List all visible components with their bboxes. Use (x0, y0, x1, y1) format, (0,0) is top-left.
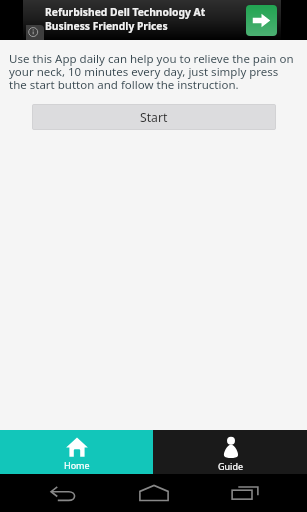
staticText: Use this App daily can help you to relie… (9, 51, 298, 93)
staticText: Home (64, 459, 90, 471)
button[interactable]: Open advertisement (246, 5, 277, 36)
button[interactable]: Home (134, 477, 174, 509)
staticText: Business Friendly Prices (45, 19, 168, 33)
button[interactable]: Ad choices info (26, 25, 44, 40)
button[interactable]: Home (0, 430, 153, 474)
button[interactable]: Recent apps (225, 477, 265, 509)
button[interactable]: Back (42, 477, 84, 509)
button[interactable]: Refurbished Dell Technology At (23, 0, 281, 40)
button[interactable]: Start (32, 104, 276, 130)
staticText: Start (140, 109, 168, 126)
staticText: Guide (218, 460, 244, 472)
staticText: Refurbished Dell Technology At (45, 5, 206, 19)
button[interactable]: Guide (153, 430, 307, 474)
